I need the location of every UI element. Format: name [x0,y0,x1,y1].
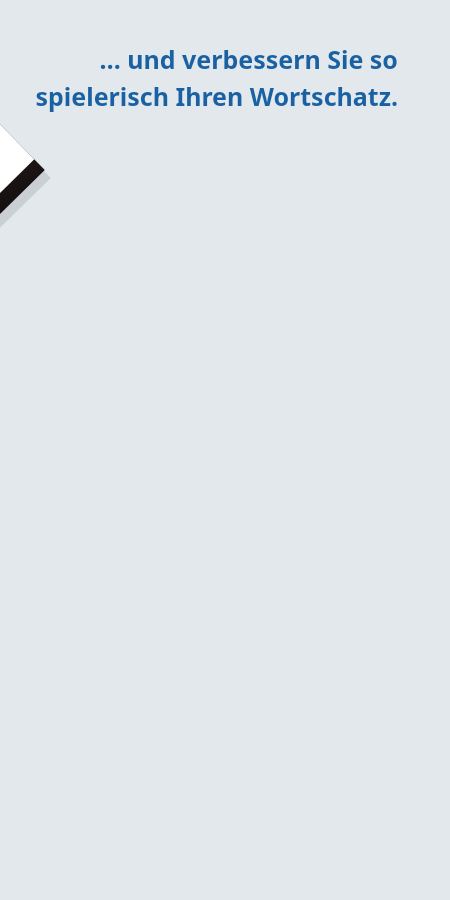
other: Smartphone showing the app [0,0,450,900]
button[interactable]: … und verbessern Sie so spielerisch Ihre… [20,42,398,113]
staticText: … und verbessern Sie so spielerisch Ihre… [20,42,398,113]
